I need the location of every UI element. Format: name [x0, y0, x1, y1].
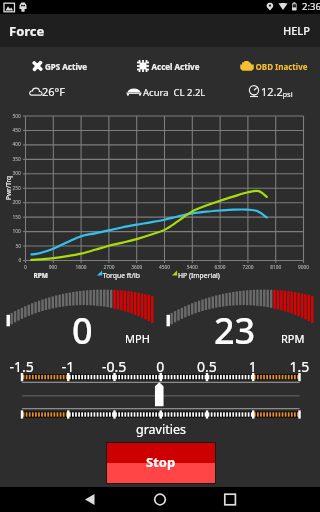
- button[interactable]: Back: [67, 487, 123, 512]
- button[interactable]: Home: [132, 487, 188, 512]
- button[interactable]: RPM gauge: [160, 284, 320, 344]
- button[interactable]: Speed gauge: [0, 284, 160, 344]
- button[interactable]: App title: [0, 14, 64, 47]
- button[interactable]: Gravity meter: [14, 370, 306, 420]
- button[interactable]: Temperature: [0, 80, 107, 106]
- button[interactable]: Vehicle: [107, 80, 213, 106]
- button[interactable]: Help: [286, 14, 320, 47]
- button[interactable]: Power and torque chart: [10, 110, 310, 275]
- button[interactable]: GPS status: [0, 52, 107, 80]
- button[interactable]: Tire pressure: [213, 80, 320, 106]
- button[interactable]: Stop: [106, 442, 216, 484]
- button[interactable]: OBD status: [213, 52, 320, 80]
- button[interactable]: Accelerometer status: [107, 52, 213, 80]
- button[interactable]: Recent apps: [197, 487, 253, 512]
